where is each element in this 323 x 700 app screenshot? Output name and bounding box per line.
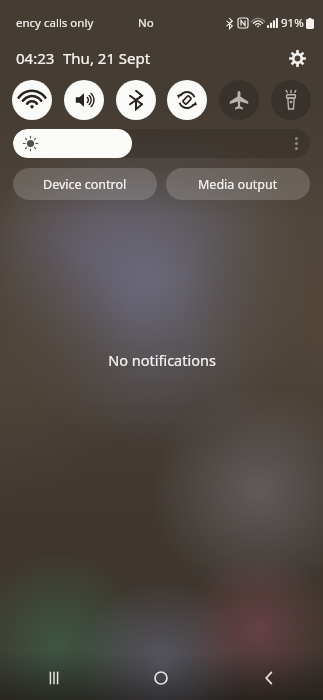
button[interactable]: Bluetooth — [116, 80, 156, 120]
button[interactable]: Back — [215, 656, 323, 700]
staticText: 91% — [281, 15, 304, 31]
staticText: ency calls only — [16, 15, 94, 31]
staticText: Media output — [198, 176, 278, 193]
button[interactable]: Recents — [0, 656, 107, 700]
staticText: Thu, 21 Sept — [63, 48, 151, 68]
staticText: No notifications — [108, 350, 216, 370]
button[interactable]: Media output — [166, 168, 310, 200]
button[interactable]: Sound — [64, 80, 104, 120]
button[interactable]: Wi-Fi — [12, 80, 52, 120]
button[interactable]: Device control — [13, 168, 157, 200]
button[interactable]: Home — [107, 656, 215, 700]
button[interactable]: Settings — [283, 44, 311, 72]
staticText: 04:23 — [16, 48, 55, 68]
button[interactable] — [13, 129, 310, 158]
button[interactable]: Flashlight — [271, 80, 311, 120]
button[interactable]: Auto rotate — [167, 80, 207, 120]
staticText: No — [138, 15, 154, 31]
staticText: Device control — [43, 176, 127, 193]
button[interactable]: Airplane mode — [219, 80, 259, 120]
